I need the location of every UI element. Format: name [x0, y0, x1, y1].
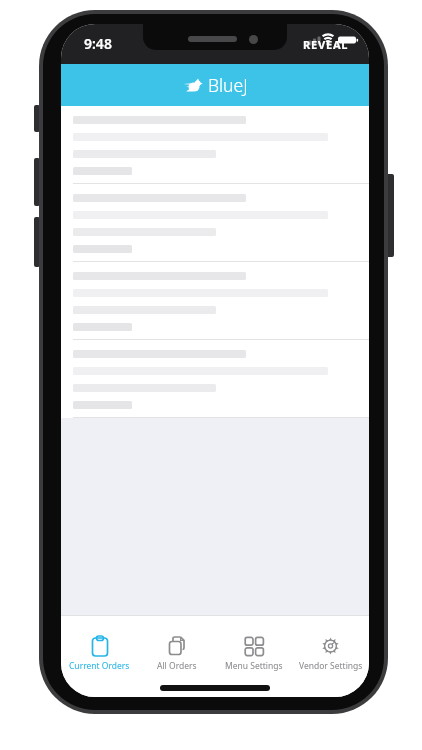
button[interactable] — [61, 262, 369, 340]
staticText: Menu Settings — [225, 660, 283, 672]
button[interactable]: Menu Settings — [215, 616, 292, 672]
staticText: Vendor Settings — [299, 660, 363, 672]
button[interactable]: Current Orders — [61, 616, 138, 672]
staticText: All Orders — [157, 660, 197, 672]
staticText: Current Orders — [69, 660, 130, 672]
button[interactable] — [61, 184, 369, 262]
button[interactable]: All Orders — [138, 616, 215, 672]
button[interactable] — [61, 106, 369, 184]
staticText: REVEAL — [303, 37, 349, 52]
staticText: BlueJ — [208, 73, 248, 97]
button[interactable] — [61, 340, 369, 418]
button[interactable]: Vendor Settings — [292, 616, 369, 672]
staticText: 9:48 — [84, 34, 112, 53]
